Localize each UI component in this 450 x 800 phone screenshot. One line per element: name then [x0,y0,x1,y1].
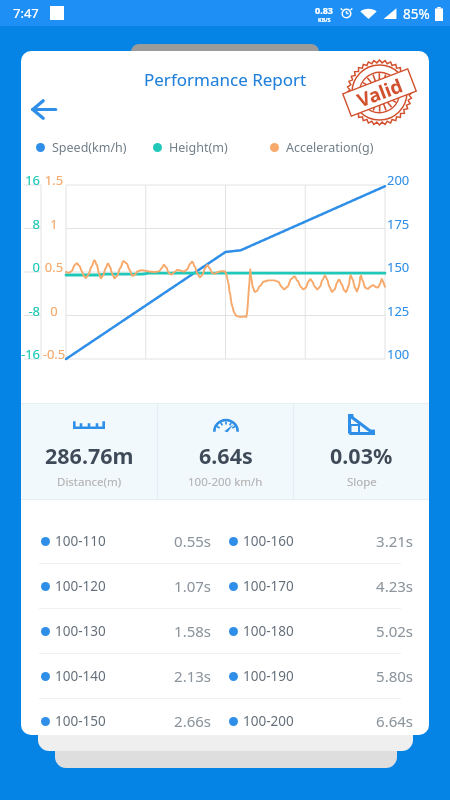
staticText: 100-130 [55,622,106,640]
button[interactable]: 100-170 [225,564,429,608]
staticText: 0 [42,302,66,320]
staticText: Speed(km/h) [52,139,127,156]
staticText: 1 [42,215,66,233]
button[interactable]: 100-190 [225,654,429,698]
staticText: 1.07s [106,576,211,596]
staticText: 16 [21,171,40,189]
staticText: Slope [347,474,377,490]
staticText: 150 [387,258,423,276]
button[interactable]: 100-130 [21,609,225,653]
staticText: 6.64s [294,711,413,731]
staticText: 5.02s [294,621,413,641]
staticText: 175 [387,215,423,233]
staticText: 1.58s [106,621,211,641]
staticText: 0.03% [330,441,393,470]
staticText: -8 [21,302,40,320]
staticText: 85% [403,5,430,23]
button[interactable]: 6.64s [158,403,293,500]
staticText: Performance Report [144,68,307,91]
staticText: 125 [387,302,423,320]
button[interactable]: 100-150 [21,699,225,735]
staticText: 100-140 [55,667,106,685]
staticText: Distance(m) [57,474,122,490]
staticText: 2.13s [106,666,211,686]
staticText: 200 [387,171,423,189]
staticText: 0.55s [106,531,211,551]
staticText: KB/S [318,16,331,23]
staticText: 4.23s [294,576,413,596]
button[interactable]: 0.03% [294,403,429,500]
staticText: -16 [21,345,40,363]
staticText: 100-160 [243,532,294,550]
staticText: 2.66s [106,711,211,731]
staticText: 286.76m [45,441,134,470]
button[interactable]: 286.76m [21,403,157,500]
button[interactable]: 100-120 [21,564,225,608]
staticText: 1.5 [42,171,66,189]
staticText: 100-200 km/h [188,474,263,490]
staticText: 100-180 [243,622,294,640]
staticText: 100-200 [243,712,294,730]
staticText: 7:47 [13,4,39,22]
button[interactable]: Back [22,87,66,131]
staticText: 0.83 [315,4,333,16]
button[interactable]: 100-160 [225,519,429,563]
button[interactable]: 100-110 [21,519,225,563]
button[interactable]: 100-200 [225,699,429,735]
staticText: Acceleration(g) [286,139,374,156]
staticText: Height(m) [169,139,228,156]
staticText: 3.21s [294,531,413,551]
staticText: -0.5 [42,345,66,363]
staticText: 100-190 [243,667,294,685]
staticText: 100-110 [55,532,106,550]
staticText: 6.64s [199,441,253,470]
staticText: 100-120 [55,577,106,595]
staticText: 8 [21,215,40,233]
staticText: 100 [387,345,423,363]
staticText: 5.80s [294,666,413,686]
staticText: 0 [21,258,40,276]
staticText: Valid [353,72,406,113]
button[interactable]: 100-140 [21,654,225,698]
button[interactable]: 100-180 [225,609,429,653]
staticText: 100-150 [55,712,106,730]
staticText: 100-170 [243,577,294,595]
staticText: 0.5 [42,258,66,276]
